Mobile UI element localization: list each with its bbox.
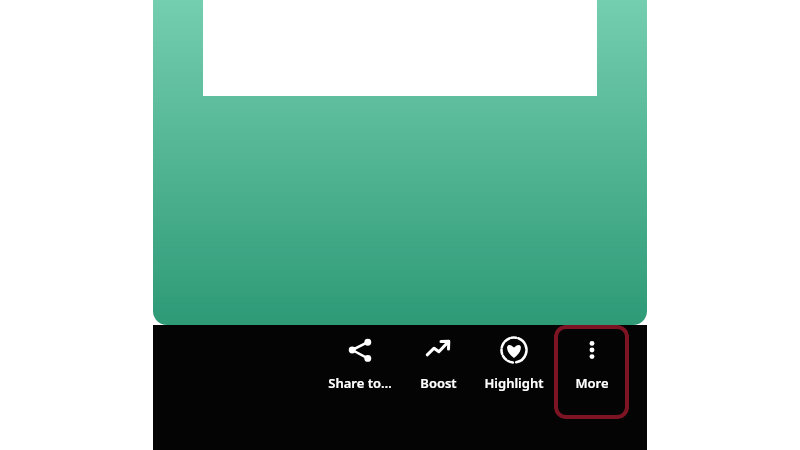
button[interactable]: Share to bbox=[317, 325, 403, 419]
other: More bbox=[577, 335, 607, 365]
button[interactable]: Boost bbox=[395, 325, 481, 419]
button[interactable]: More bbox=[554, 325, 629, 419]
staticText: More bbox=[575, 374, 609, 392]
staticText: Highlight bbox=[484, 374, 544, 392]
button[interactable]: Highlight bbox=[471, 325, 557, 419]
staticText: Share to… bbox=[328, 374, 392, 392]
staticText: Boost bbox=[420, 374, 457, 392]
